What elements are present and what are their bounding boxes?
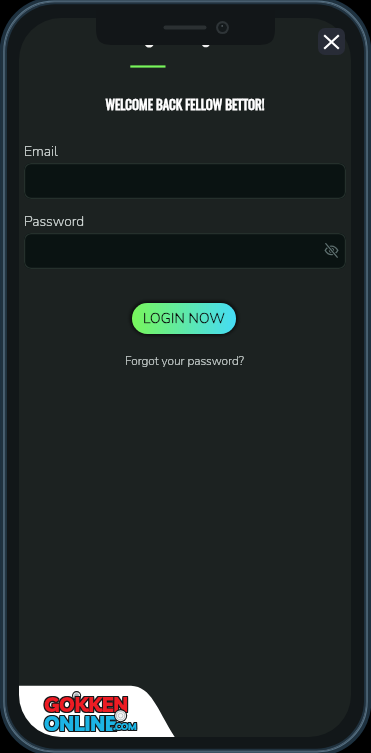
staticText: GOKKEN [44, 693, 128, 718]
staticText: .COM [113, 719, 137, 731]
button[interactable]: LOGIN NOW [132, 303, 236, 334]
staticText: ONLINE [44, 711, 117, 736]
button[interactable]: Show password [321, 241, 342, 260]
staticText: GOKKEN [43, 691, 127, 716]
staticText: GOKKEN [43, 692, 127, 717]
staticText: GOKKEN [43, 693, 127, 718]
staticText: WELCOME BACK FELLOW BETTOR! [19, 94, 351, 113]
staticText: .COM [114, 720, 138, 732]
staticText: GOKKEN [45, 693, 129, 718]
staticText: GOKKEN [45, 692, 129, 717]
staticText: ONLINE [43, 712, 116, 737]
button[interactable]: Forgot your password? [124, 352, 245, 369]
staticText: ONLINE [43, 710, 116, 735]
staticText: ONLINE [45, 711, 118, 736]
staticText: .COM [112, 720, 136, 732]
staticText: ONLINE [43, 711, 116, 736]
staticText: ONLINE [45, 710, 118, 735]
button[interactable]: Close [318, 28, 345, 55]
staticText: ONLINE [44, 712, 117, 737]
button[interactable] [24, 163, 346, 199]
staticText: .COM [113, 721, 137, 733]
staticText: .COM [112, 719, 136, 731]
button[interactable] [24, 233, 346, 269]
staticText: GOKKEN [44, 692, 128, 717]
staticText: Forgot your password? [125, 353, 244, 369]
staticText: LOGIN NOW [143, 309, 226, 328]
staticText: ONLINE [45, 712, 118, 737]
staticText: .COM [112, 721, 136, 733]
staticText: GOKKEN [45, 691, 129, 716]
staticText: GOKKEN [44, 691, 128, 716]
staticText: .COM [114, 721, 138, 733]
staticText: ONLINE [44, 710, 117, 735]
staticText: .COM [114, 719, 138, 731]
staticText: Password [24, 212, 85, 231]
staticText: .COM [113, 720, 137, 732]
staticText: Email [24, 142, 58, 161]
